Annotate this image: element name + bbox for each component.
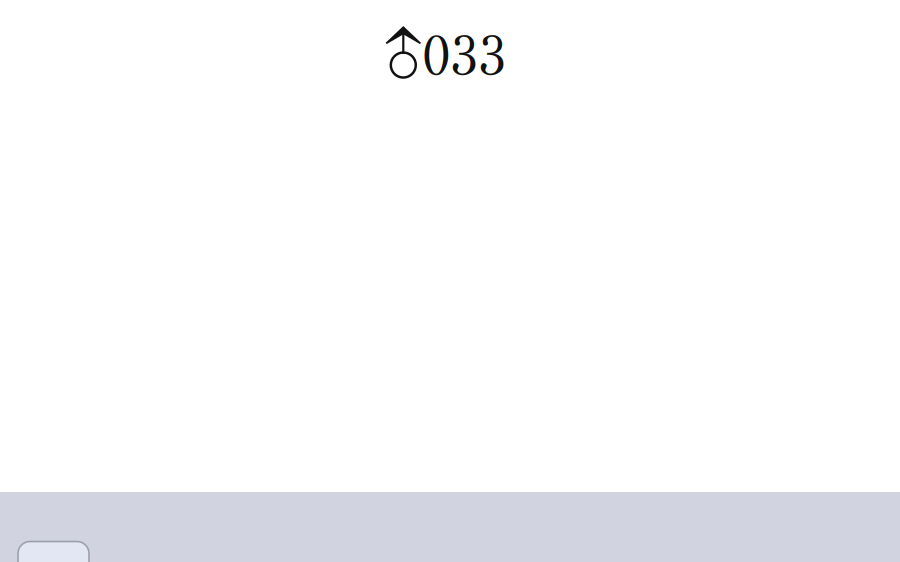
staticText: 033 [417,23,510,90]
button[interactable]: Page 033 [385,21,514,87]
button[interactable]: Open card [18,541,89,562]
